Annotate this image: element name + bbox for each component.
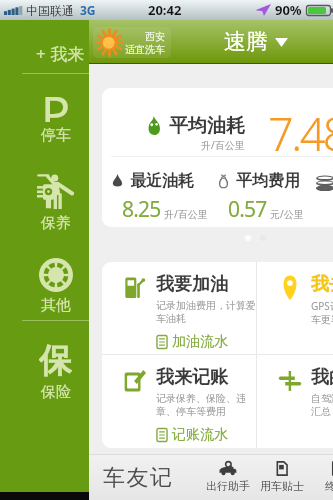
staticText: 速腾 [224, 28, 268, 56]
button[interactable]: 终端 [309, 455, 333, 500]
staticText: 保 [39, 340, 72, 378]
staticText: 车友记 [103, 464, 174, 492]
staticText: 8.25 [122, 195, 161, 224]
button[interactable]: 我的 [257, 355, 333, 448]
button[interactable]: + 我来 [36, 41, 85, 65]
staticText: 适宜洗车 [125, 43, 165, 56]
button[interactable]: 保养 [11, 172, 100, 233]
staticText: 平均油耗 [169, 114, 245, 138]
button[interactable]: 我来记账 [102, 355, 256, 448]
staticText: 用车贴士 [260, 479, 304, 493]
button[interactable]: 西安 [93, 27, 171, 58]
staticText: 记录加油费用，计算爱 车油耗 [156, 299, 256, 325]
staticText: 90% [275, 1, 302, 19]
staticText: 终端 [325, 479, 333, 493]
staticText: 3G [80, 2, 96, 18]
staticText: 升/百公里 [201, 138, 245, 152]
button[interactable]: 平均油耗 [102, 88, 333, 227]
staticText: 我去 [311, 273, 333, 296]
staticText: 停车 [41, 126, 71, 145]
staticText: 我要加油 [156, 273, 228, 296]
button[interactable]: 我去 [257, 262, 333, 354]
staticText: 20:42 [148, 1, 182, 19]
button[interactable]: 出行助手 [201, 455, 255, 500]
button[interactable]: 其他 [11, 258, 100, 315]
button[interactable]: 我要加油 [102, 262, 256, 354]
staticText: 加油流水 [172, 333, 228, 351]
staticText: 出行助手 [206, 479, 250, 493]
button[interactable]: 用车贴士 [255, 455, 309, 500]
staticText: 西安 [145, 30, 165, 43]
button[interactable]: 车友记 [103, 464, 174, 492]
staticText: 保险 [41, 383, 71, 402]
staticText: 升/百公里 [164, 207, 208, 221]
staticText: 记账流水 [172, 426, 228, 444]
button[interactable]: 保 [11, 340, 100, 402]
staticText: GPS记 车更容 [311, 299, 333, 326]
button[interactable]: P [11, 80, 100, 145]
staticText: 平均费用 [236, 171, 300, 191]
staticText: 其他 [41, 296, 71, 315]
staticText: P [41, 80, 71, 122]
staticText: 我来记账 [156, 366, 228, 389]
staticText: 元/公里 [270, 207, 304, 221]
button[interactable]: 速腾 [218, 24, 294, 60]
staticText: 0.57 [228, 195, 267, 224]
staticText: + 我来 [36, 42, 85, 65]
staticText: 记录保养、保险、违 章、停车等费用 [156, 392, 246, 418]
staticText: 自驾游、 汇总， [311, 392, 333, 418]
staticText: 我的 [311, 366, 333, 389]
staticText: 最近油耗 [130, 171, 194, 191]
staticText: 7.48 [268, 103, 333, 164]
staticText: 中国联通 [26, 3, 74, 18]
staticText: 保养 [41, 214, 71, 233]
